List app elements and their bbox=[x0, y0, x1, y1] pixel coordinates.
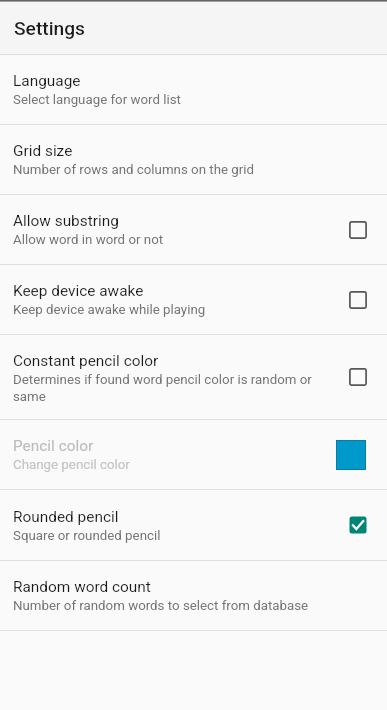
other: Pencil color swatch bbox=[336, 440, 366, 470]
staticText: Number of random words to select from da… bbox=[13, 598, 309, 614]
button[interactable]: Rounded pencil bbox=[0, 490, 387, 560]
staticText: Allow word in word or not bbox=[13, 232, 164, 248]
button[interactable]: Language bbox=[0, 55, 387, 124]
button[interactable]: Allow substring bbox=[0, 195, 387, 264]
button[interactable]: Grid size bbox=[0, 125, 387, 194]
button[interactable]: Pencil color bbox=[0, 420, 387, 489]
staticText: Language bbox=[13, 72, 81, 90]
staticText: Random word count bbox=[13, 578, 151, 596]
button[interactable]: Constant pencil color bbox=[0, 335, 387, 419]
staticText: Pencil color bbox=[13, 437, 94, 455]
staticText: Determines if found word pencil color is… bbox=[13, 372, 337, 404]
staticText: Allow substring bbox=[13, 212, 119, 230]
staticText: Keep device awake while playing bbox=[13, 302, 206, 318]
staticText: Settings bbox=[14, 17, 85, 40]
staticText: Rounded pencil bbox=[13, 508, 119, 526]
other: Checked bbox=[349, 516, 367, 534]
other: Unchecked bbox=[349, 221, 367, 239]
staticText: Square or rounded pencil bbox=[13, 528, 161, 544]
button[interactable]: Random word count bbox=[0, 561, 387, 630]
staticText: Keep device awake bbox=[13, 282, 144, 300]
staticText: Constant pencil color bbox=[13, 352, 159, 370]
staticText: Select language for word list bbox=[13, 92, 181, 108]
staticText: Change pencil color bbox=[13, 457, 130, 473]
other: Unchecked bbox=[349, 368, 367, 386]
staticText: Number of rows and columns on the grid bbox=[13, 162, 255, 178]
button[interactable]: Keep device awake bbox=[0, 265, 387, 334]
other: Unchecked bbox=[349, 291, 367, 309]
staticText: Grid size bbox=[13, 142, 73, 160]
